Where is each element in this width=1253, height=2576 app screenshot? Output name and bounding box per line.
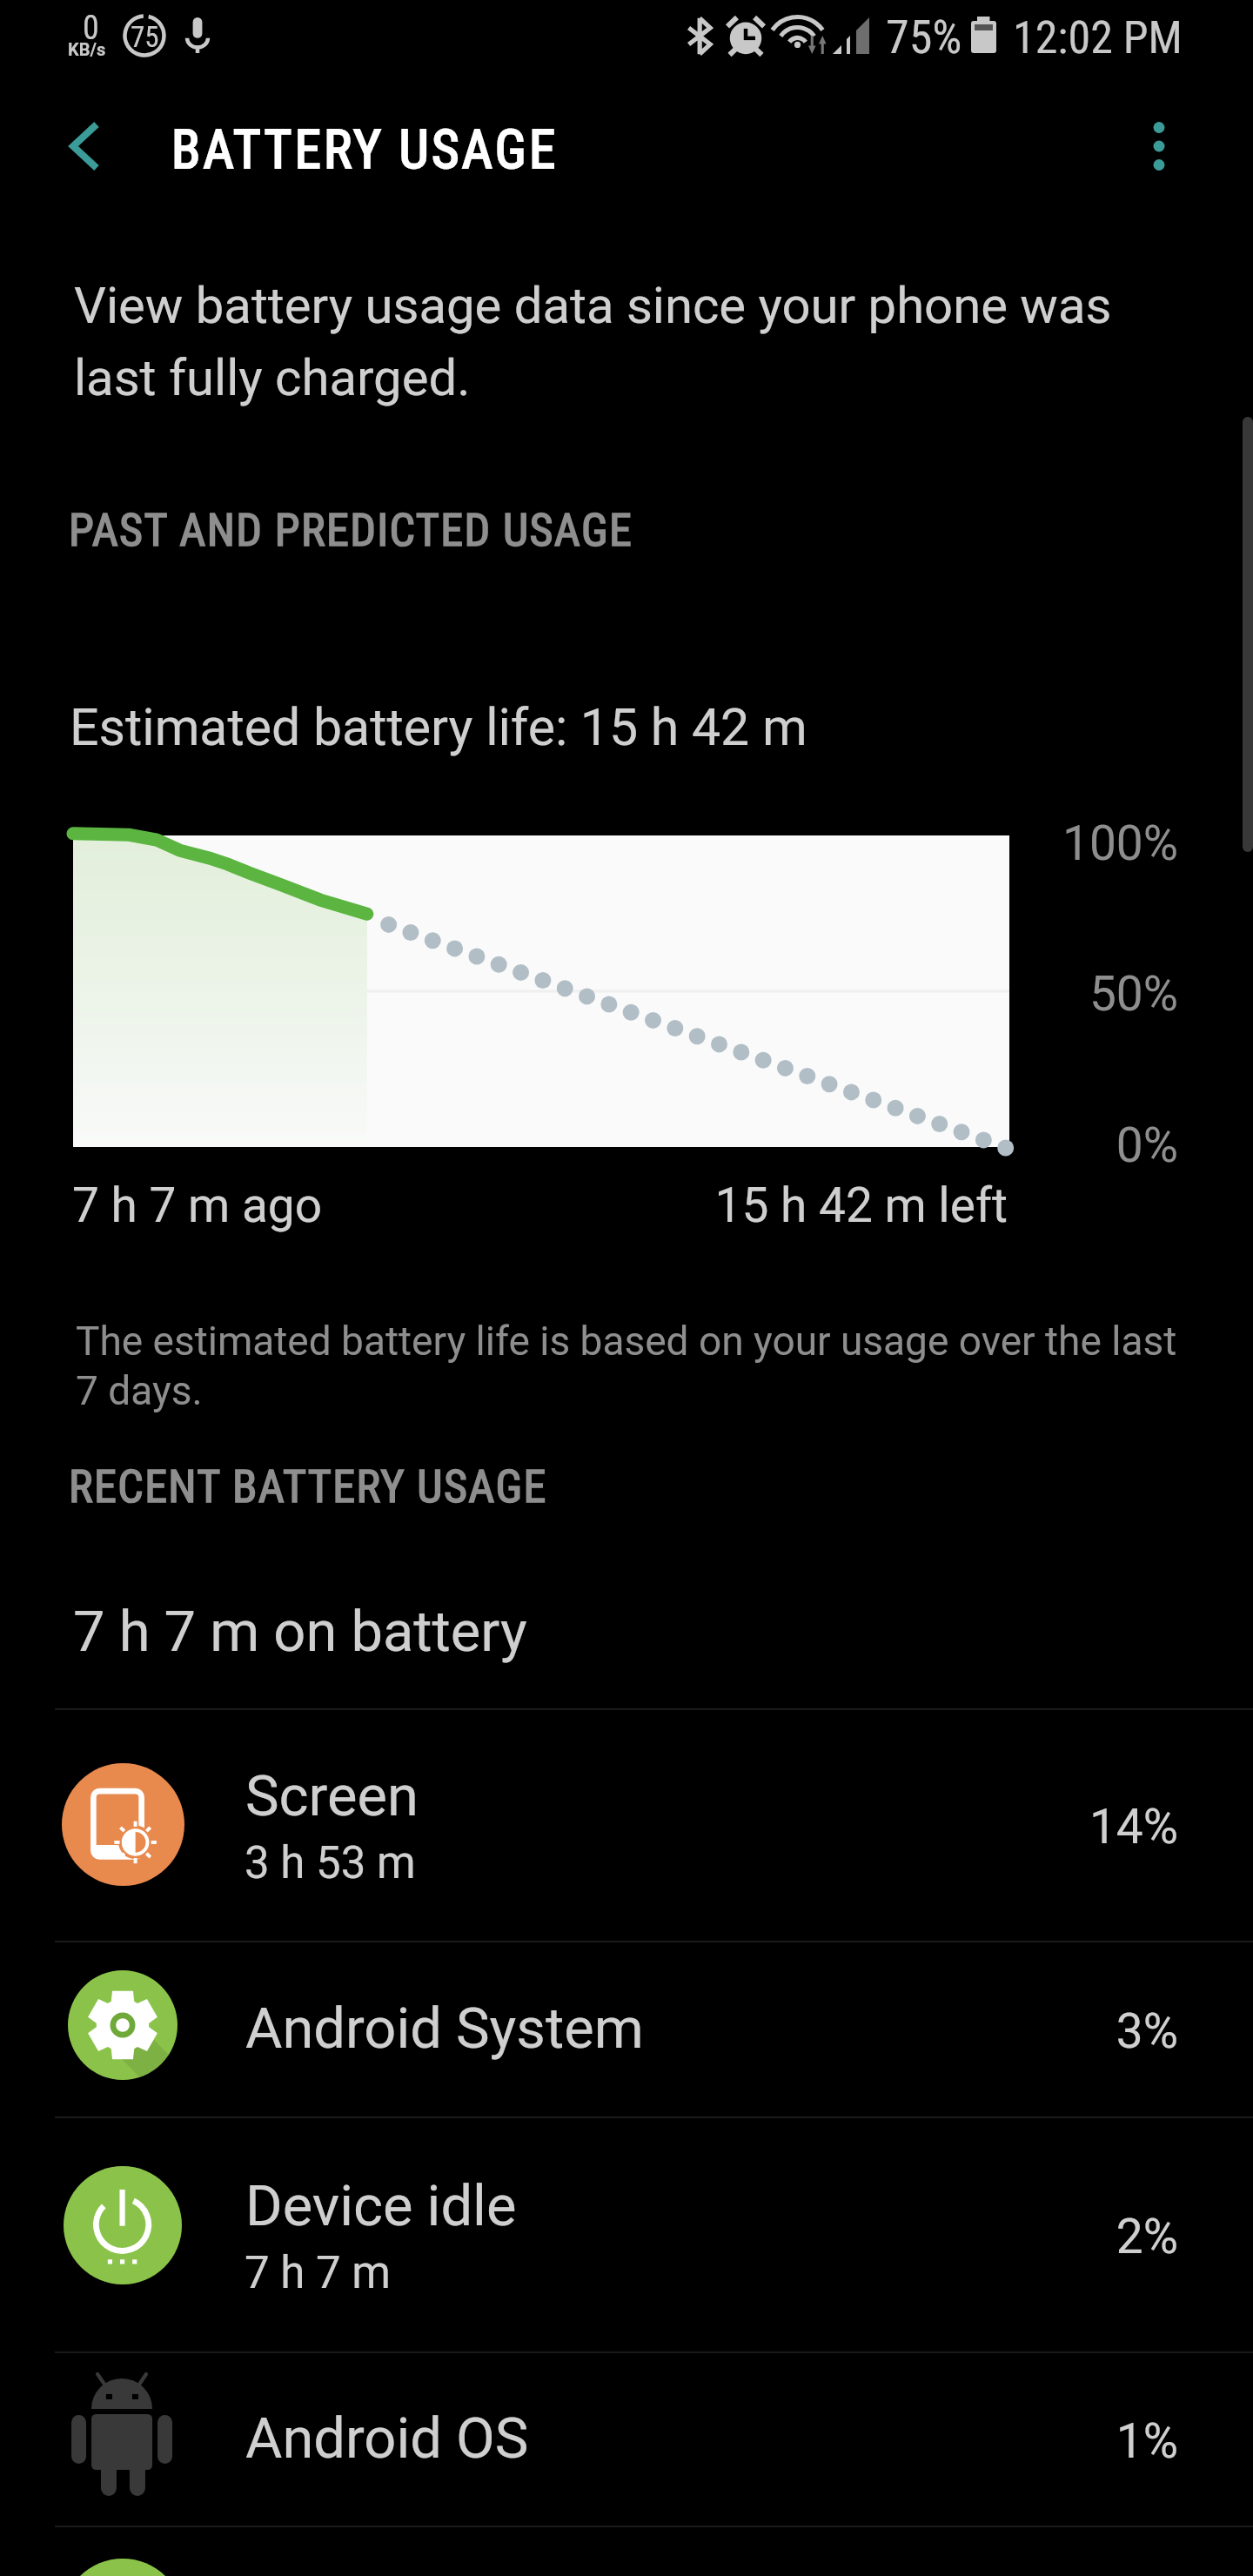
staticText: 7 h 7 m on battery [73,1599,527,1665]
staticText: KB/s [68,39,106,59]
staticText: 1% [830,2413,1178,2469]
staticText: RECENT BATTERY USAGE [69,1460,547,1513]
staticText: Android OS [245,2405,529,2472]
staticText: 100% [987,815,1178,871]
staticText: 7 h 7 m ago [72,1177,323,1233]
staticText: View battery usage data since your phone… [74,276,1183,407]
button[interactable] [0,1941,1253,2116]
button[interactable] [0,2351,1253,2526]
staticText: Estimated battery life: 15 h 42 m [70,697,807,757]
staticText: 2% [830,2209,1178,2264]
button[interactable]: Back [42,103,129,190]
staticText: 0% [987,1117,1178,1173]
staticText: 75% [886,10,962,64]
staticText: 0 [83,9,99,48]
staticText: 14% [830,1799,1178,1855]
staticText: Device idle [245,2173,517,2239]
staticText: 12:02 PM [1013,11,1183,64]
staticText: 3% [830,2003,1178,2059]
staticText: 3 h 53 m [245,1837,416,1889]
button[interactable] [0,2116,1253,2351]
button[interactable]: More options [1122,109,1196,184]
staticText: 75 [131,20,159,54]
staticText: BATTERY USAGE [171,118,559,180]
staticText: 7 h 7 m [245,2247,392,2299]
staticText: Screen [245,1763,419,1829]
staticText: PAST AND PREDICTED USAGE [69,504,633,557]
staticText: The estimated battery life is based on y… [76,1318,1198,1414]
staticText: Android System [245,1996,644,2062]
staticText: 15 h 42 m left [660,1177,1008,1233]
staticText: 50% [987,966,1178,1022]
button[interactable] [0,1708,1253,1941]
